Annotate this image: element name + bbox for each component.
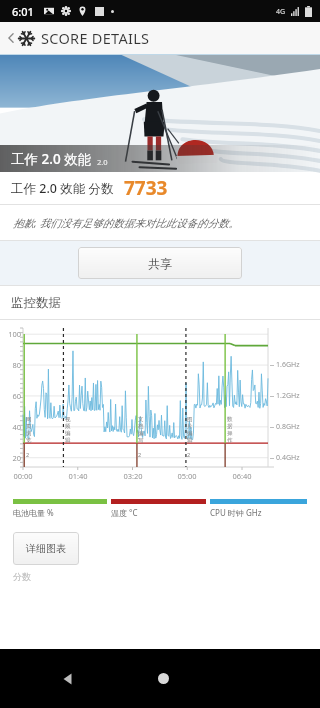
button[interactable]: Back — [60, 671, 76, 687]
staticText: 40 — [2, 422, 21, 432]
staticText: 2 — [138, 451, 142, 458]
button[interactable]: 共享 — [78, 247, 242, 279]
staticText: 工作 2.0 效能 分数 — [11, 180, 114, 197]
staticText: 片 — [187, 423, 193, 430]
staticText: 视 — [65, 416, 71, 423]
staticText: 频 — [65, 423, 71, 430]
staticText: 详细图表 — [26, 542, 66, 555]
staticText: 01:40 — [64, 471, 92, 481]
staticText: 0.4GHz — [276, 453, 300, 463]
staticText: 图 — [187, 416, 193, 423]
button[interactable]: Home — [158, 673, 169, 684]
staticText: 据 — [227, 423, 233, 430]
staticText: 监控数据 — [11, 295, 61, 311]
staticText: 抱歉, 我们没有足够的数据来对比此设备的分数。 — [13, 216, 239, 230]
staticText: 编 — [187, 430, 193, 437]
staticText: 2 — [187, 451, 191, 458]
staticText: 20 — [2, 453, 21, 463]
staticText: 写 — [138, 437, 144, 444]
staticText: 温度 °C — [111, 507, 210, 518]
staticText: 电池电量 % — [13, 507, 111, 518]
staticText: 浏 — [26, 430, 32, 437]
staticText: 06:40 — [228, 471, 256, 481]
staticText: SCORE DETAILS — [41, 28, 150, 48]
staticText: 编 — [65, 430, 71, 437]
staticText: 0.8GHz — [276, 422, 300, 432]
staticText: 7733 — [124, 175, 168, 201]
staticText: 00:00 — [9, 471, 37, 481]
other: Back — [4, 31, 18, 45]
staticText: 2 — [26, 451, 30, 458]
button[interactable]: 详细图表 — [13, 532, 79, 565]
staticText: 05:00 — [173, 471, 201, 481]
staticText: 1.2GHz — [276, 391, 300, 401]
staticText: 编 — [138, 430, 144, 437]
staticText: 2.0 — [97, 157, 108, 167]
staticText: 60 — [2, 391, 21, 401]
staticText: 6:01 — [12, 4, 34, 19]
staticText: 03:20 — [119, 471, 147, 481]
staticText: 数 — [227, 416, 233, 423]
staticText: 文 — [138, 416, 144, 423]
staticText: 网 — [26, 416, 32, 423]
staticText: 辑 — [65, 437, 71, 444]
staticText: 辑 — [187, 437, 193, 444]
staticText: 工作 2.0 效能 — [11, 150, 92, 168]
staticText: 操 — [227, 430, 233, 437]
staticText: 1.6GHz — [276, 360, 300, 370]
staticText: CPU 时钟 GHz — [210, 507, 262, 518]
staticText: 档 — [138, 423, 144, 430]
staticText: 共享 — [148, 256, 172, 271]
staticText: 分数 — [13, 571, 31, 582]
staticText: 览 — [26, 437, 32, 444]
staticText: 80 — [2, 360, 21, 370]
staticText: 4G — [276, 7, 286, 17]
staticText: 页 — [26, 423, 32, 430]
staticText: 100 — [2, 329, 21, 339]
button[interactable]: Back — [0, 22, 320, 54]
staticText: 作 — [227, 437, 233, 444]
